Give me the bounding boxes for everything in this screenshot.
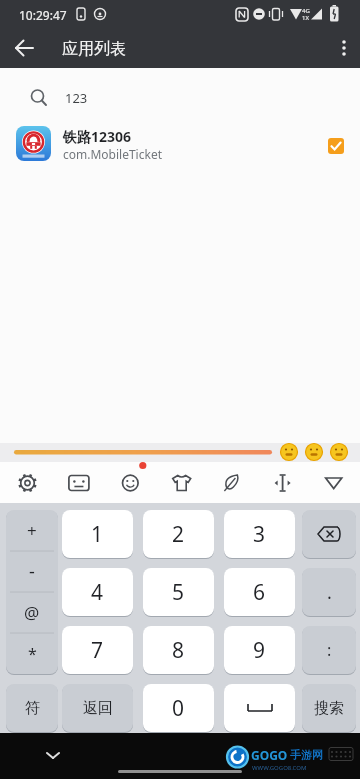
button[interactable]: 9 [224,626,295,674]
button[interactable]: 3 [224,510,295,558]
staticText: 2 [172,520,185,549]
button[interactable] [8,462,48,503]
staticText: WWW.GOGO8.COM [252,764,307,772]
button[interactable] [59,462,99,503]
button[interactable] [8,32,40,64]
staticText: - [29,559,35,584]
button[interactable]: 7 [62,626,133,674]
button[interactable]: 0 [143,684,214,732]
staticText: GOGO [251,747,288,763]
staticText: 3 [253,520,266,549]
button[interactable] [110,462,150,503]
button[interactable]: 5 [143,568,214,616]
staticText: 1 [91,520,104,549]
button[interactable]: 2 [143,510,214,558]
staticText: . [327,580,332,605]
staticText: com.MobileTicket [63,146,162,162]
staticText: 4 [91,578,104,607]
staticText: 符 [25,699,40,718]
button[interactable]: 123 [0,80,360,116]
button[interactable]: 8 [143,626,214,674]
button[interactable]: 4 [62,568,133,616]
button[interactable]: @ [6,592,58,633]
staticText: 铁路12306 [63,127,132,146]
staticText: 8 [172,636,185,665]
button[interactable]: : [302,626,356,674]
staticText: + [27,519,37,542]
button[interactable] [263,462,303,503]
button[interactable]: 返回 [62,684,133,732]
button[interactable]: 1 [62,510,133,558]
button[interactable]: GOGO [224,744,354,776]
staticText: 9 [253,636,266,665]
button[interactable]: + [6,510,58,551]
staticText: 4G [302,7,310,15]
button[interactable] [37,741,69,769]
staticText: 返回 [83,699,113,718]
button[interactable] [211,462,251,503]
button[interactable]: 符 [6,684,58,732]
button[interactable]: - [6,551,58,592]
staticText: 123 [65,89,88,107]
staticText: 搜索 [314,699,344,718]
button[interactable] [330,32,358,64]
button[interactable]: 6 [224,568,295,616]
staticText: 7 [91,636,104,665]
button[interactable] [328,138,344,154]
button[interactable] [224,684,295,732]
button[interactable]: . [302,568,356,616]
staticText: * [28,643,37,665]
staticText: 0 [172,694,185,723]
staticText: : [327,639,332,661]
staticText: 10:29:47 [19,7,67,23]
staticText: @ [24,601,40,624]
staticText: 1X [302,14,309,22]
button[interactable] [162,462,202,503]
staticText: 5 [172,578,185,607]
staticText: 应用列表 [62,39,126,59]
button[interactable] [314,462,354,503]
button[interactable]: * [6,633,58,674]
staticText: 手游网 [290,748,323,762]
button[interactable] [302,510,356,558]
staticText: 6 [253,578,266,607]
button[interactable]: 铁路12306 [0,120,360,168]
button[interactable]: 搜索 [302,684,356,732]
